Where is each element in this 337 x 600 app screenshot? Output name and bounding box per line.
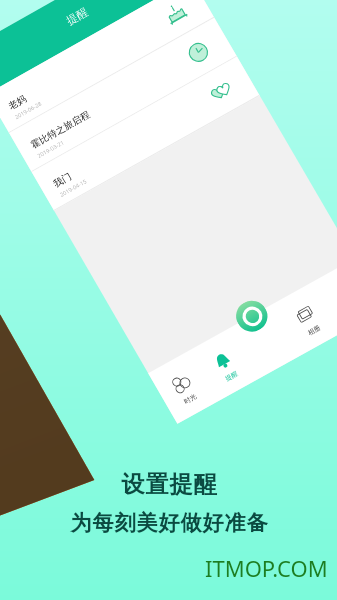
- staticText: ITMOP.COM: [205, 553, 328, 583]
- button[interactable]: 霍比特之旅启程: [0, 100, 250, 148]
- staticText: 美的各种人物的提线木偶，: [10, 392, 118, 403]
- button[interactable]: 相册: [150, 396, 200, 458]
- staticText: 铺的手工制品，那些精: [10, 374, 100, 385]
- staticText: 提醒: [113, 19, 137, 34]
- staticText: 为每刻美好做好准备: [70, 510, 268, 536]
- staticText: 霍比特之旅启程: [14, 117, 84, 130]
- staticText: 2019-03-21: [14, 133, 46, 141]
- staticText: 吸引着来来往往的出入于每一家店: [10, 356, 145, 367]
- staticText: 提醒: [68, 437, 82, 446]
- staticText: 设置提醒: [121, 470, 217, 499]
- staticText: 我门: [14, 165, 34, 178]
- staticText: 老妈: [14, 69, 34, 82]
- button[interactable]: 老妈: [0, 52, 250, 100]
- staticText: 做工精细的小模型以及风格经典: [10, 410, 136, 421]
- staticText: 这是一家专卖纪念品的小店 紧紧: [10, 337, 139, 349]
- staticText: 2019-04-15: [14, 181, 46, 189]
- button[interactable]: 时光: [0, 396, 50, 458]
- staticText: 建筑的图 画，从的是这些美丽的: [10, 428, 139, 440]
- button[interactable]: 提醒: [50, 396, 100, 458]
- button[interactable]: 我门: [0, 148, 250, 196]
